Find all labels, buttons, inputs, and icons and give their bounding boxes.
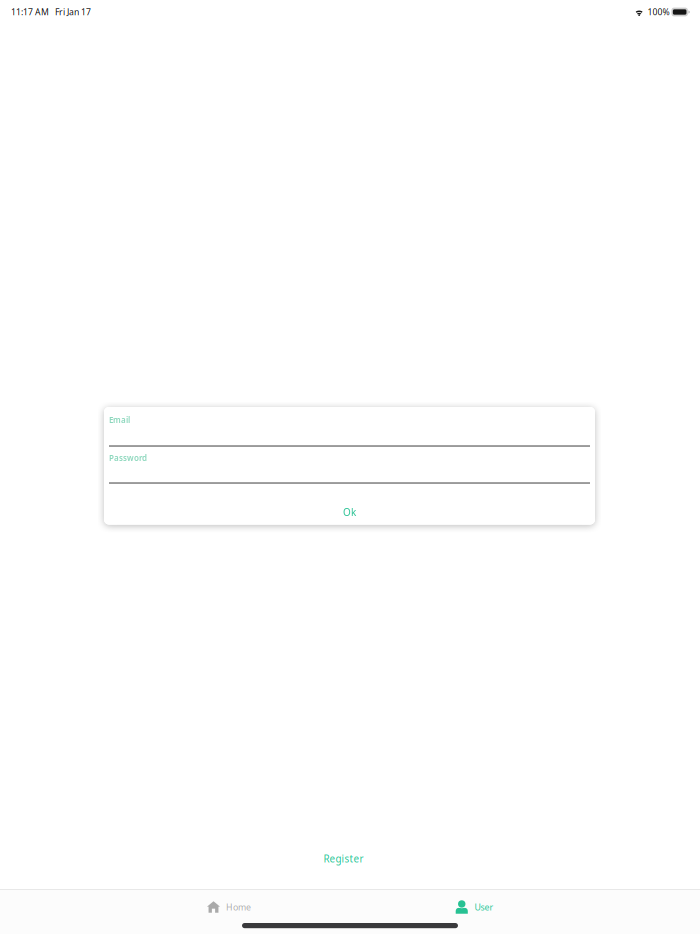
button[interactable]: Password xyxy=(104,445,595,482)
staticText: Fri Jan 17 xyxy=(55,6,91,18)
button[interactable]: Register xyxy=(307,845,379,872)
staticText: Home xyxy=(226,901,251,913)
staticText: 100% xyxy=(647,6,669,18)
button[interactable]: Ok xyxy=(104,482,595,524)
button[interactable]: Home xyxy=(197,892,261,922)
staticText: 11:17 AM xyxy=(11,6,49,18)
staticText: Password xyxy=(109,452,147,463)
staticText: Ok xyxy=(343,505,356,519)
button[interactable]: User xyxy=(445,892,503,922)
staticText: User xyxy=(474,901,493,913)
staticText: Email xyxy=(109,414,130,425)
button[interactable]: Email xyxy=(104,407,595,445)
staticText: Register xyxy=(323,852,363,865)
